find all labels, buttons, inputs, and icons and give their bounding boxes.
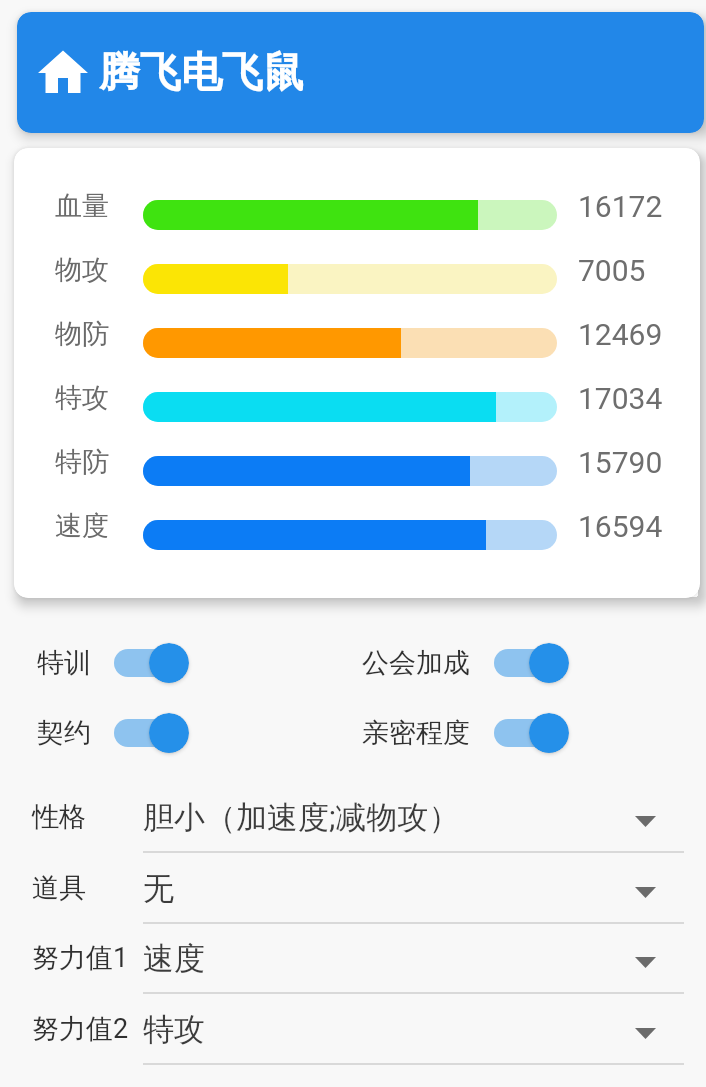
button[interactable] xyxy=(114,643,190,683)
staticText: 契约 xyxy=(37,716,91,750)
staticText: 特攻 xyxy=(55,381,109,415)
staticText: 努力值2 xyxy=(32,1012,129,1046)
button[interactable]: 无 xyxy=(143,864,684,912)
staticText: 物攻 xyxy=(55,253,109,287)
button[interactable]: 特攻 xyxy=(143,1005,684,1053)
staticText: 12469 xyxy=(578,317,663,352)
staticText: 腾飞电飞鼠 xyxy=(99,47,304,99)
staticText: 道具 xyxy=(32,871,86,905)
staticText: 速度 xyxy=(143,939,205,978)
button[interactable]: 胆小（加速度;减物攻） xyxy=(143,793,684,841)
staticText: 7005 xyxy=(578,253,646,288)
staticText: 亲密程度 xyxy=(362,716,470,750)
button[interactable]: 腾飞电飞鼠 xyxy=(17,12,704,133)
staticText: 特防 xyxy=(55,445,109,479)
staticText: 物防 xyxy=(55,317,109,351)
staticText: 15790 xyxy=(578,445,663,480)
button[interactable] xyxy=(494,713,570,753)
staticText: 16172 xyxy=(578,189,663,224)
staticText: 公会加成 xyxy=(362,646,470,680)
staticText: 17034 xyxy=(578,381,663,416)
staticText: 胆小（加速度;减物攻） xyxy=(143,798,460,837)
staticText: 努力值1 xyxy=(32,941,129,975)
button[interactable] xyxy=(494,643,570,683)
staticText: 特攻 xyxy=(143,1010,205,1049)
staticText: 特训 xyxy=(37,646,91,680)
button[interactable]: 速度 xyxy=(143,934,684,982)
staticText: 血量 xyxy=(55,189,109,223)
staticText: 速度 xyxy=(55,509,109,543)
staticText: 16594 xyxy=(578,509,663,544)
button[interactable] xyxy=(114,713,190,753)
staticText: 无 xyxy=(143,869,174,908)
staticText: 性格 xyxy=(32,800,86,834)
